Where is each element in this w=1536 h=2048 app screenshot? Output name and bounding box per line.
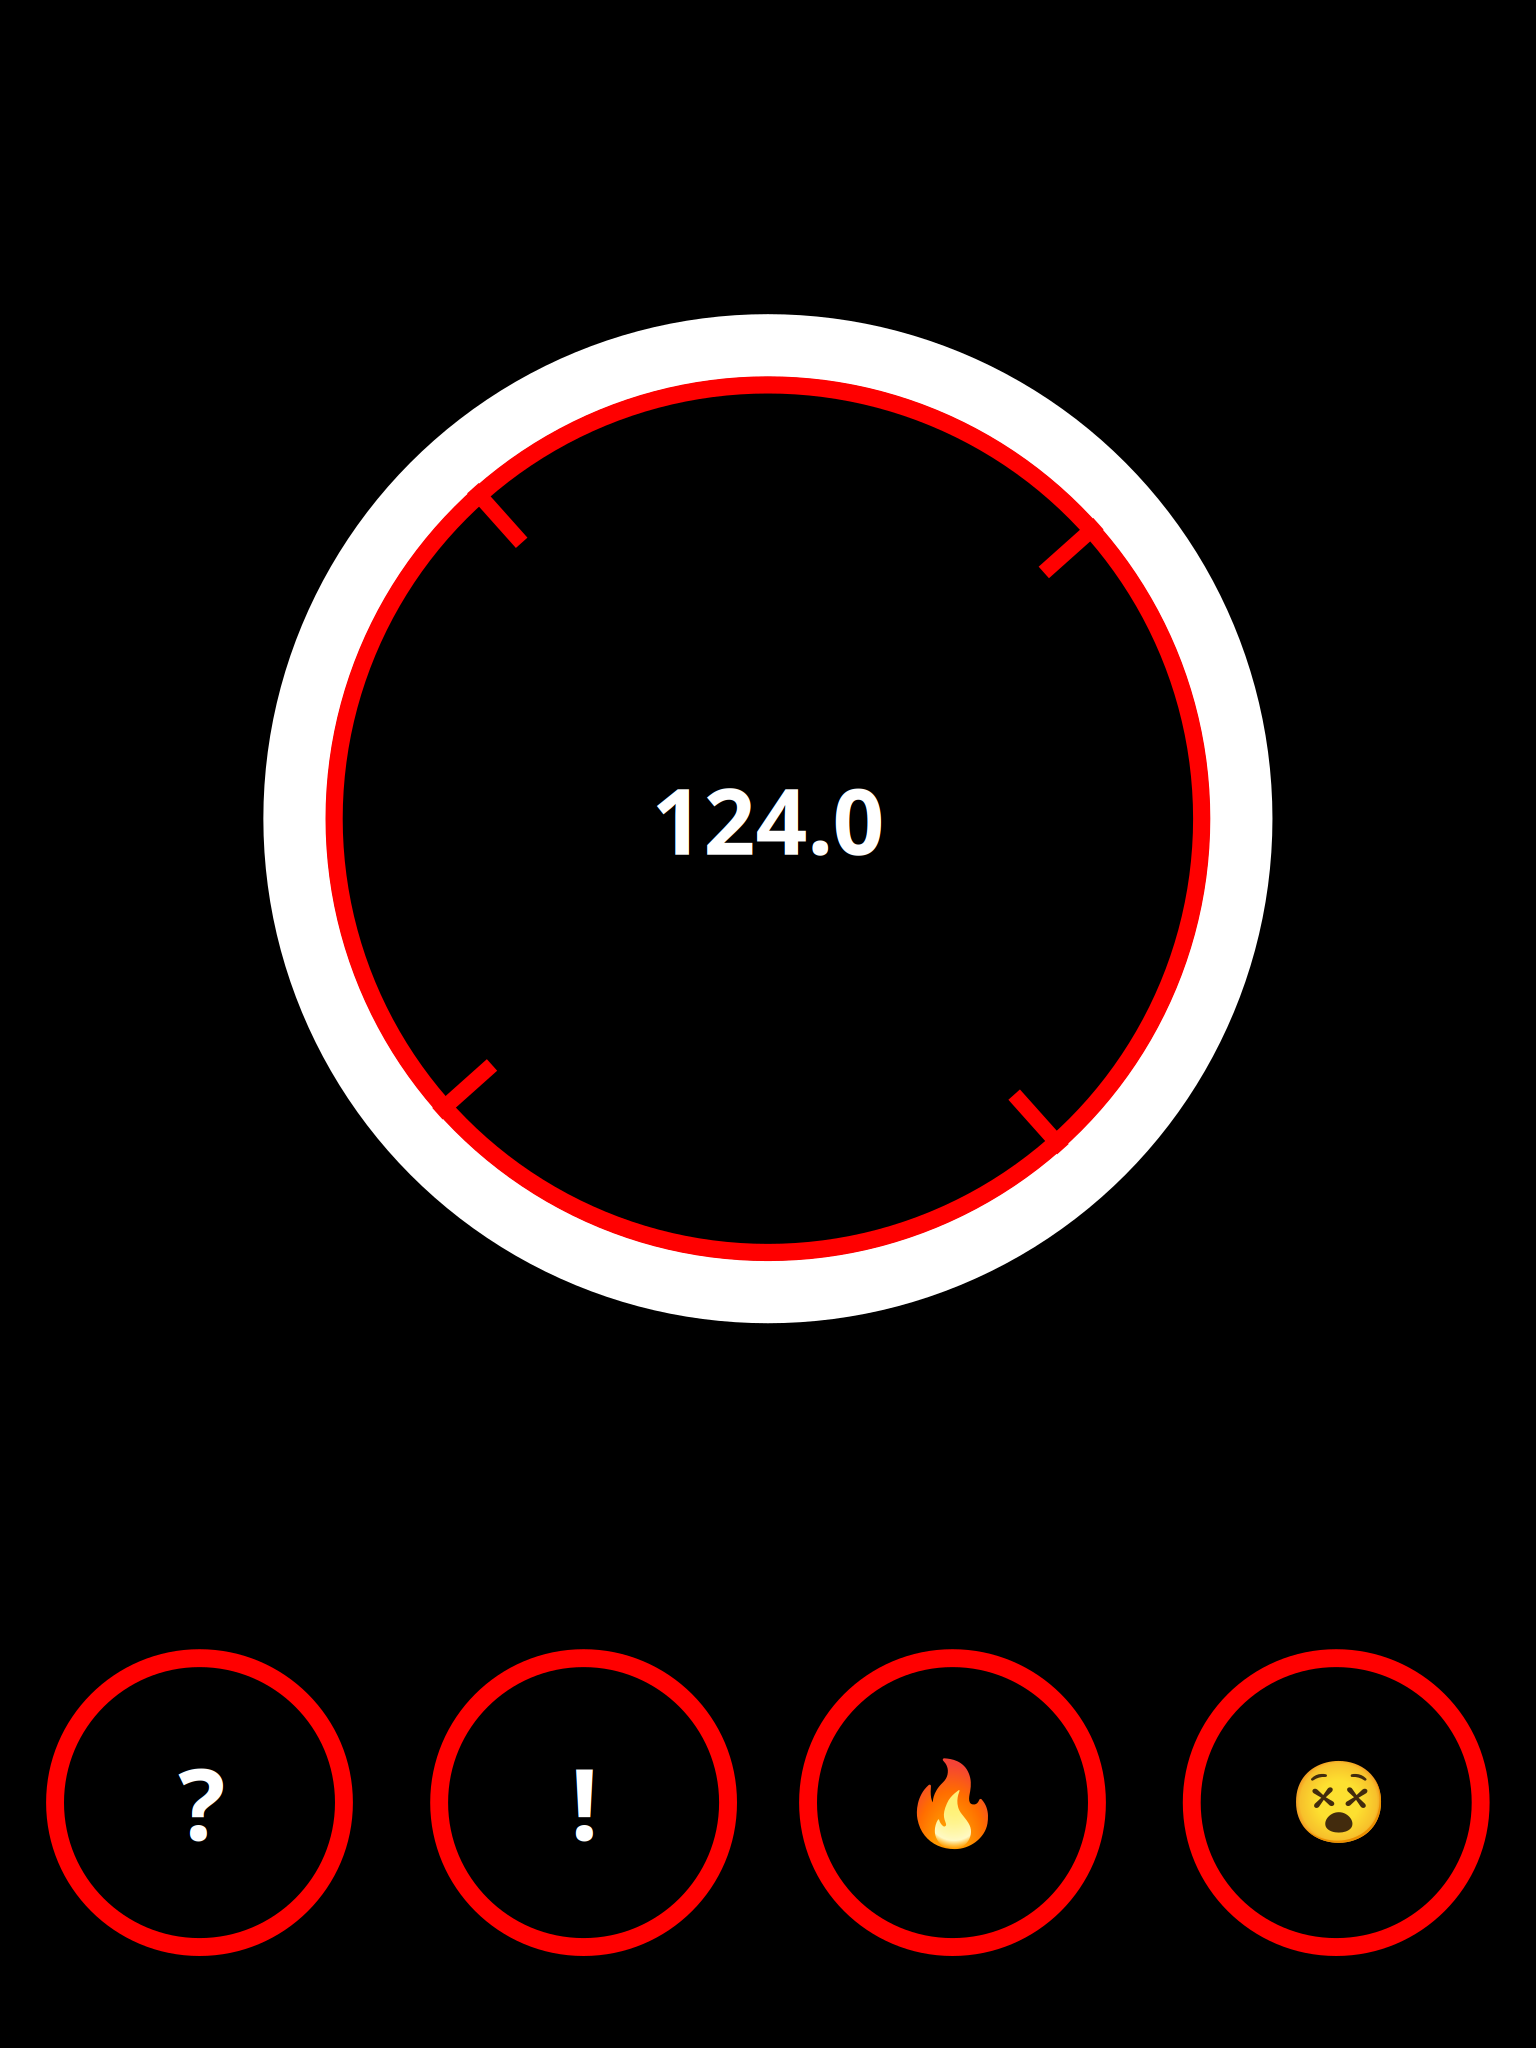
button[interactable]: Too much: [1183, 1649, 1490, 1956]
staticText: 😵: [1289, 1757, 1389, 1848]
button[interactable]: Not sure: [46, 1649, 353, 1956]
button[interactable]: Hot: [799, 1649, 1106, 1956]
staticText: !: [571, 1737, 599, 1868]
staticText: 124.0: [651, 759, 884, 880]
button[interactable]: Alert: [430, 1649, 737, 1956]
staticText: 🔥: [901, 1756, 1004, 1851]
staticText: ?: [178, 1737, 225, 1868]
